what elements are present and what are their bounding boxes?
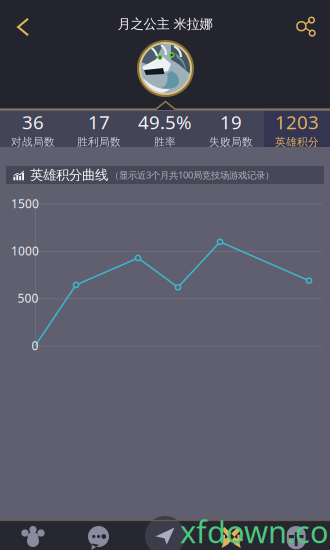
staticText: 500 — [17, 290, 38, 306]
button[interactable]: Chat — [66, 520, 132, 550]
staticText: xfdown.com — [180, 511, 330, 550]
staticText: （显示近3个月共100局竞技场游戏记录） — [110, 169, 274, 181]
button[interactable]: Share — [286, 7, 326, 47]
staticText: 1000 — [11, 243, 39, 259]
button[interactable]: 49.5% — [132, 111, 198, 147]
staticText: 0 — [31, 337, 38, 353]
staticText: 英雄积分 — [275, 135, 319, 148]
button[interactable]: Heroes — [0, 520, 66, 550]
button[interactable]: Share match — [132, 520, 198, 550]
button[interactable]: 19 — [198, 111, 264, 147]
staticText: 49.5% — [138, 110, 192, 134]
staticText: 17 — [88, 110, 110, 134]
staticText: 月之公主 米拉娜 — [117, 16, 212, 32]
staticText: 19 — [220, 110, 242, 134]
button[interactable]: 17 — [66, 111, 132, 147]
staticText: 英雄积分曲线 — [30, 167, 108, 183]
staticText: 对战局数 — [11, 135, 55, 148]
staticText: 1203 — [275, 110, 319, 134]
staticText: 失败局数 — [209, 135, 253, 148]
button[interactable]: Back — [3, 7, 43, 47]
staticText: 胜利局数 — [77, 135, 121, 148]
button[interactable]: 1203 — [264, 111, 330, 147]
button[interactable]: 36 — [0, 111, 66, 147]
button[interactable]: Battles — [198, 520, 264, 550]
button[interactable]: Profile — [264, 520, 330, 550]
staticText: 1500 — [11, 195, 39, 211]
staticText: 胜率 — [154, 135, 176, 148]
staticText: 36 — [22, 110, 44, 134]
